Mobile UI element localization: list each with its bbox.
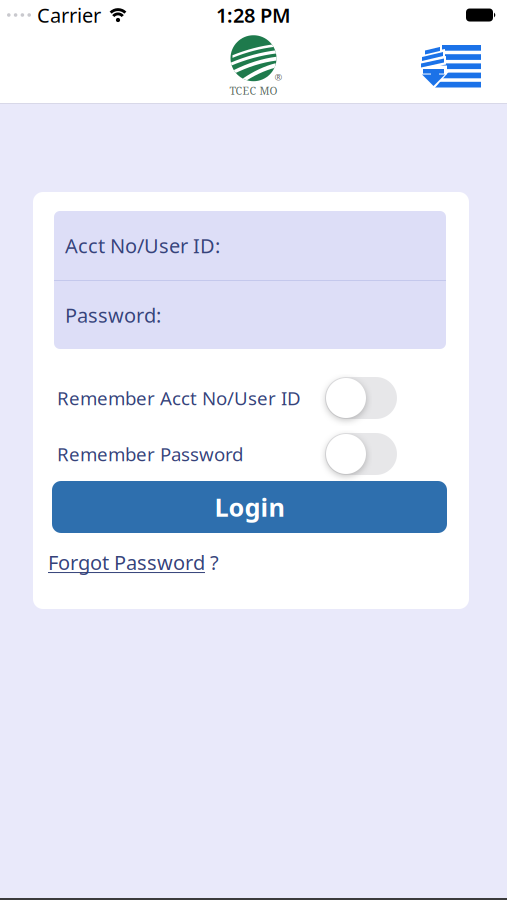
button[interactable]: Acct No/User ID — [54, 211, 446, 280]
staticText: Remember Acct No/User ID — [57, 386, 301, 410]
button[interactable]: Remember Acct No/User ID — [325, 377, 397, 419]
button[interactable]: Password — [54, 281, 446, 349]
staticText: Remember Password — [57, 442, 243, 466]
staticText: ? — [205, 549, 219, 576]
staticText: Acct No/User ID: — [65, 232, 220, 259]
staticText: TCEC MO — [229, 83, 277, 98]
button[interactable]: Menu — [418, 44, 482, 88]
button[interactable]: Login — [52, 481, 447, 533]
staticText: ® — [274, 71, 282, 83]
staticText: Carrier — [37, 2, 101, 28]
staticText: 1:28 PM — [216, 2, 291, 28]
staticText: Password: — [65, 302, 161, 328]
staticText: Forgot Password — [48, 549, 205, 576]
staticText: Login — [214, 490, 284, 524]
button[interactable]: Remember Password — [325, 433, 397, 475]
button[interactable]: Forgot Password — [48, 549, 219, 576]
